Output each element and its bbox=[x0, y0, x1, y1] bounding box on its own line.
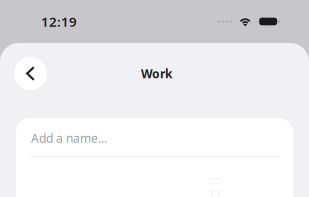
button[interactable]: Back bbox=[14, 57, 47, 90]
staticText: 12:19 bbox=[41, 13, 77, 30]
staticText: 17 bbox=[208, 186, 222, 197]
staticText: Work bbox=[141, 65, 172, 81]
button[interactable]: Add a name... bbox=[16, 118, 293, 156]
staticText: Add a name... bbox=[31, 130, 107, 146]
